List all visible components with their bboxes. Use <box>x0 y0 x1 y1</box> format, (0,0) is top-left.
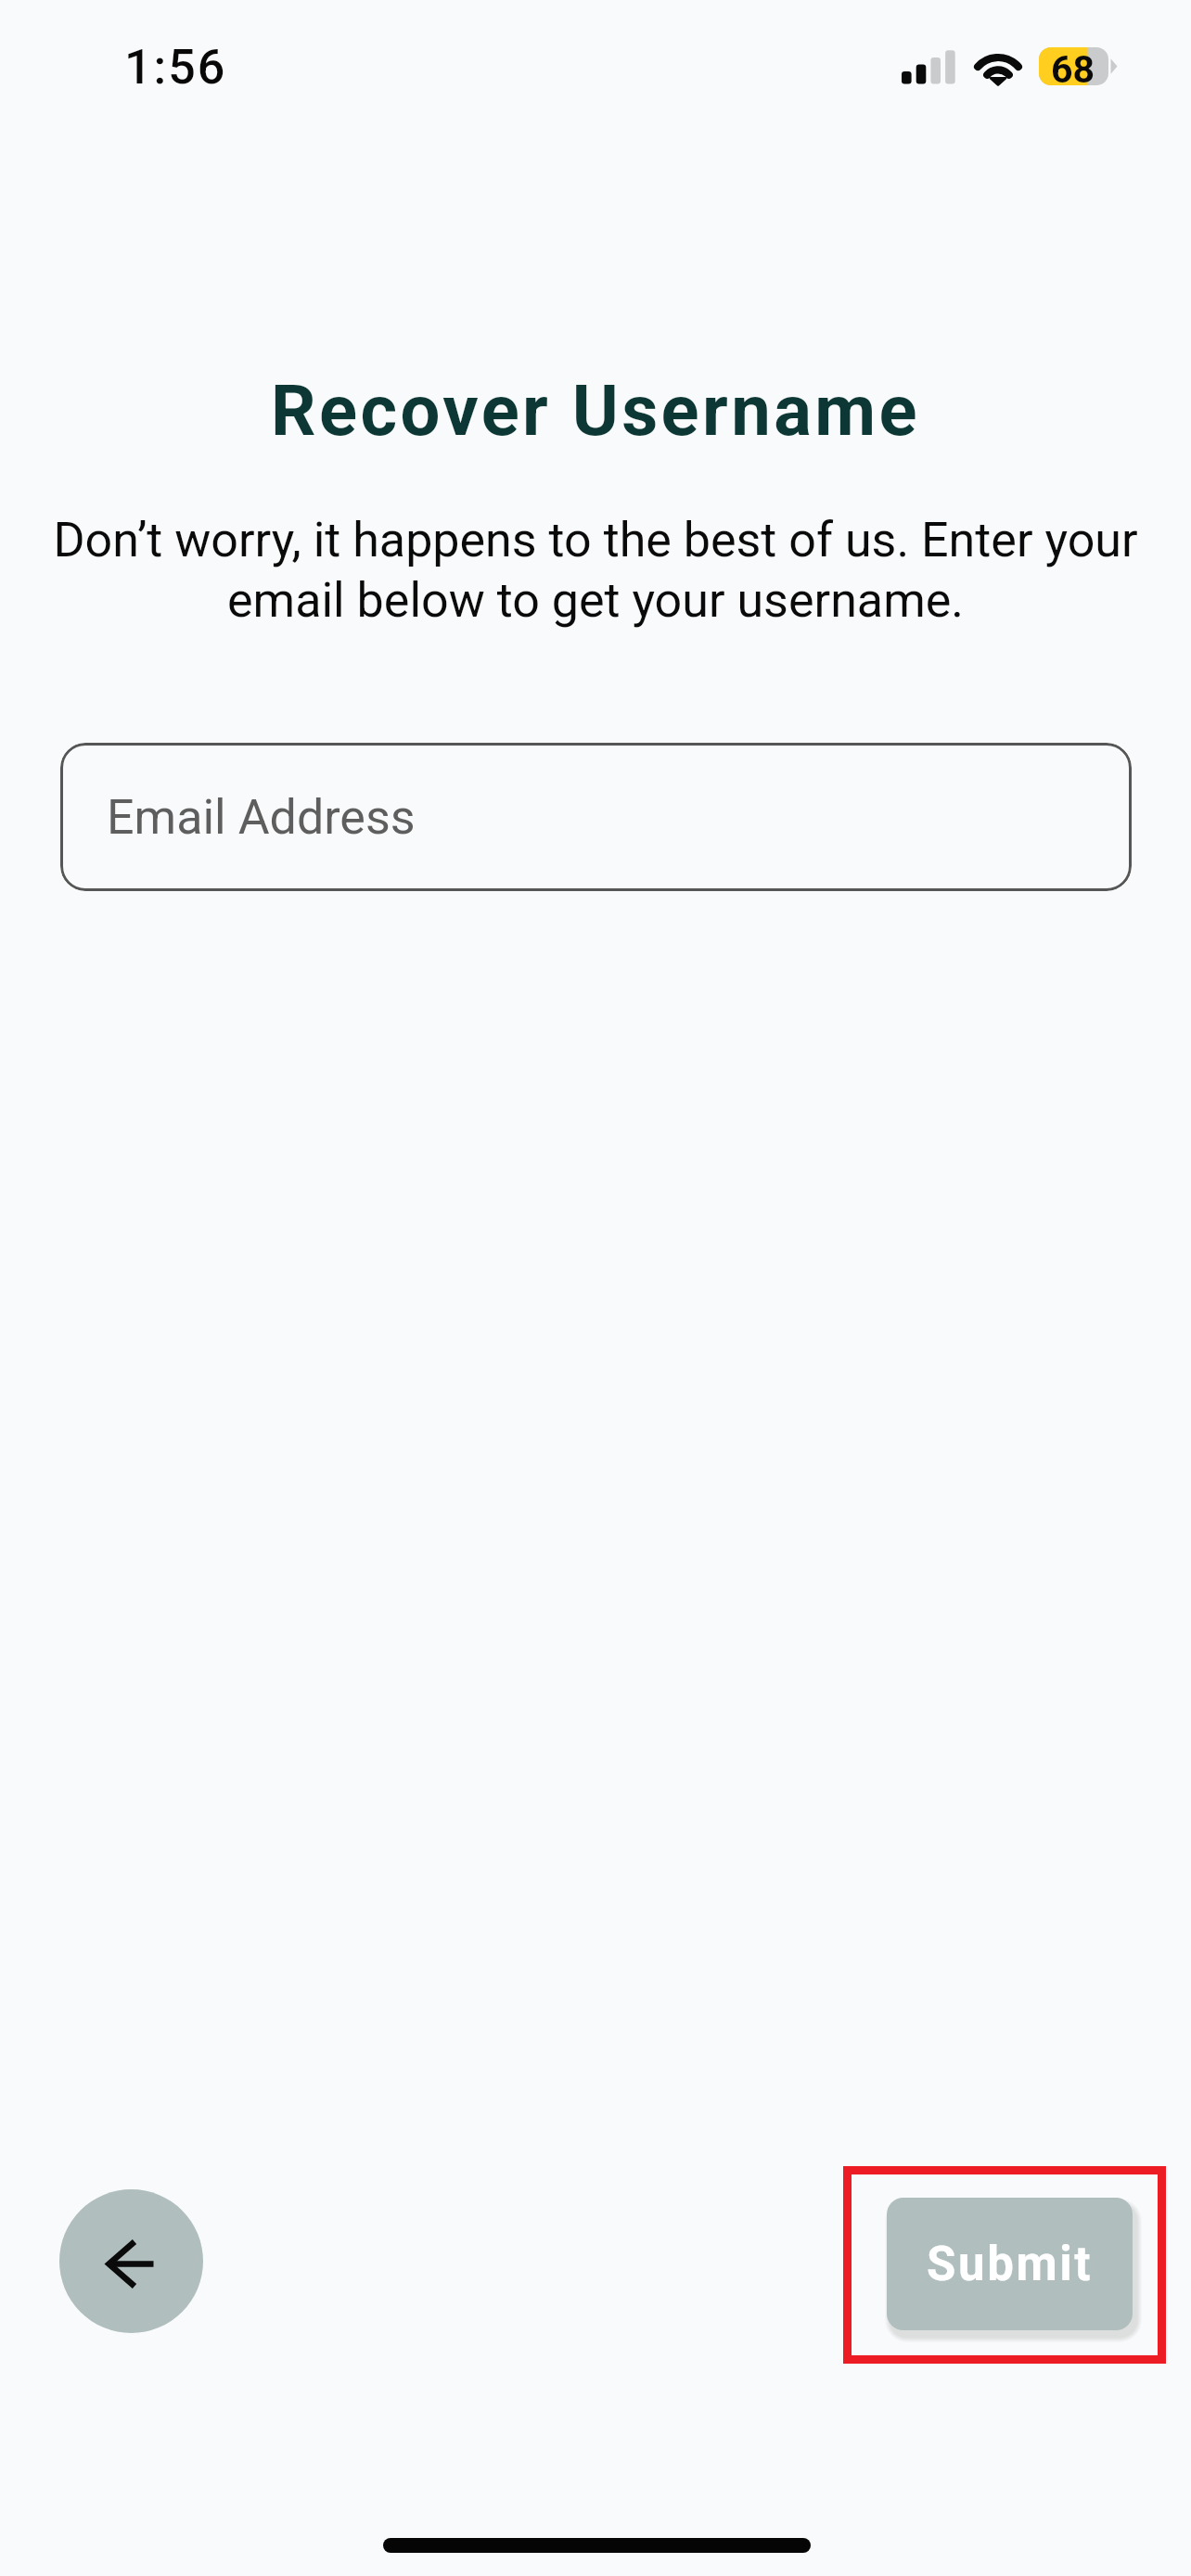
staticText: Don’t worry, it happens to the best of u… <box>48 512 1143 629</box>
staticText: 1:56 <box>124 39 227 96</box>
staticText: Submit <box>927 2237 1094 2292</box>
staticText: 68 <box>1051 47 1095 86</box>
staticText: Recover Username <box>0 369 1191 452</box>
staticText: Email Address <box>107 789 416 846</box>
button[interactable]: Submit <box>887 2198 1133 2330</box>
button[interactable]: Email Address input <box>60 743 1132 891</box>
button[interactable]: Back <box>59 2189 203 2333</box>
